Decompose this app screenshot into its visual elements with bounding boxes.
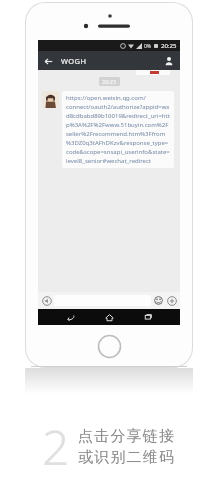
button[interactable]: Home bbox=[102, 310, 116, 324]
staticText: 0% bbox=[144, 43, 152, 50]
button[interactable]: Back bbox=[63, 310, 77, 324]
button[interactable]: https://open.weixin.qg.com/connect/oauth… bbox=[62, 91, 174, 168]
staticText: https://open.weixin.qg.com/connect/oauth… bbox=[66, 94, 170, 165]
staticText: 20:23 bbox=[102, 78, 117, 85]
button[interactable]: Voice message bbox=[41, 295, 52, 306]
button[interactable]: Contact profile bbox=[158, 55, 180, 67]
button[interactable]: Back bbox=[38, 56, 58, 66]
staticText: 2 bbox=[42, 414, 70, 479]
staticText: WOGH bbox=[61, 56, 87, 66]
button[interactable]: Recent apps bbox=[141, 310, 155, 324]
staticText: 20:25 bbox=[161, 42, 177, 50]
staticText: 或识别二维码 bbox=[78, 448, 176, 467]
button[interactable]: Sender avatar bbox=[42, 91, 59, 108]
staticText: 点击分享链接 bbox=[78, 427, 176, 446]
button[interactable]: Emoji bbox=[153, 295, 164, 306]
button[interactable]: More options bbox=[166, 295, 177, 306]
